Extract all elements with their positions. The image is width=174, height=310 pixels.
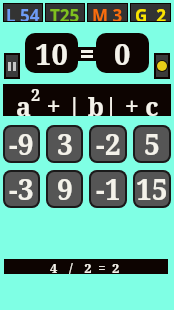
staticText: 15 <box>136 170 168 208</box>
button[interactable]: 10 <box>25 33 78 73</box>
button[interactable]: Hint <box>156 55 168 77</box>
button[interactable]: 5 <box>133 125 171 163</box>
button[interactable]: -1 <box>89 170 127 208</box>
staticText: a2 + | b| + c <box>16 84 159 116</box>
button[interactable]: 0 <box>96 33 149 73</box>
staticText: G 2 <box>135 4 166 21</box>
staticText: 3 <box>57 125 73 163</box>
staticText: -9 <box>9 125 34 163</box>
staticText: -1 <box>96 170 121 208</box>
button[interactable]: 9 <box>46 170 83 208</box>
staticText: 4 / 2 = 2 <box>50 259 122 274</box>
staticText: L 54 <box>6 4 40 21</box>
staticText: 10 <box>35 34 68 73</box>
button[interactable]: T25 <box>46 4 84 21</box>
button[interactable]: -3 <box>3 170 40 208</box>
staticText: 9 <box>57 170 73 208</box>
staticText: 0 <box>114 34 131 73</box>
staticText: M 3 <box>92 4 123 21</box>
button[interactable]: 15 <box>133 170 171 208</box>
button[interactable]: -9 <box>3 125 40 163</box>
button[interactable]: 3 <box>46 125 83 163</box>
staticText: T25 <box>50 4 80 21</box>
staticText: 5 <box>144 125 160 163</box>
button[interactable]: G 2 <box>131 4 170 21</box>
button[interactable]: L 54 <box>4 4 42 21</box>
button[interactable]: M 3 <box>88 4 127 21</box>
button[interactable]: Pause <box>6 55 18 77</box>
staticText: -3 <box>9 170 34 208</box>
staticText: -2 <box>96 125 121 163</box>
button[interactable]: -2 <box>89 125 127 163</box>
